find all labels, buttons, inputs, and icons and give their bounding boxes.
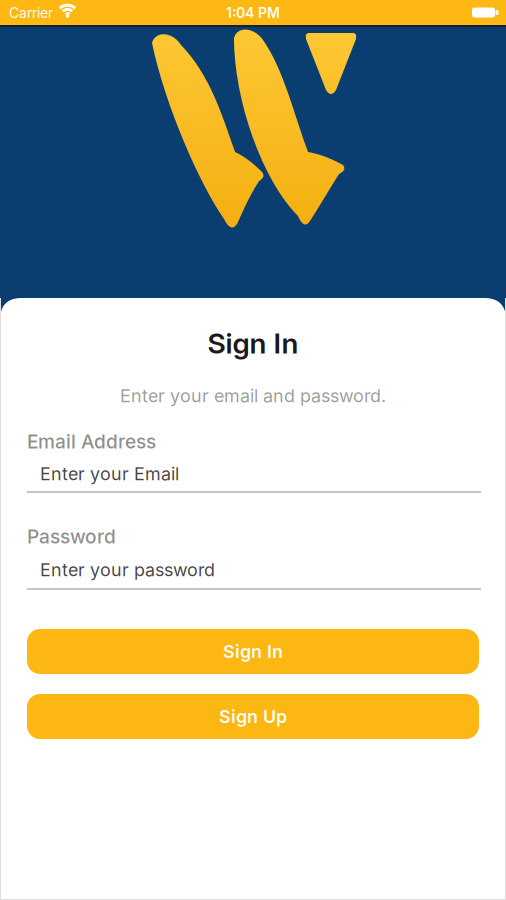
staticText: Sign Up (219, 706, 287, 727)
button[interactable]: Password (27, 559, 481, 590)
staticText: Password (27, 525, 116, 548)
button[interactable]: Sign In (27, 629, 479, 674)
staticText: Enter your password (40, 559, 215, 581)
button[interactable]: Email Address (27, 463, 481, 493)
staticText: Enter your Email (40, 463, 179, 485)
staticText: Enter your email and password. (120, 385, 386, 407)
staticText: 1:04 PM (226, 4, 280, 21)
staticText: Sign In (207, 326, 298, 360)
button[interactable]: Sign Up (27, 694, 479, 739)
staticText: Email Address (27, 430, 156, 453)
staticText: Carrier (9, 4, 53, 21)
staticText: Sign In (223, 641, 283, 662)
